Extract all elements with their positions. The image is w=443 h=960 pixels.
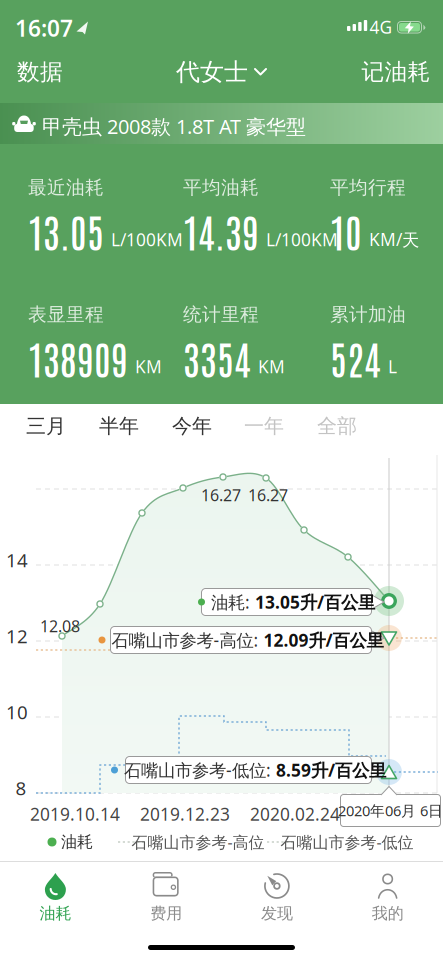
staticText: 半年 <box>99 414 139 438</box>
button[interactable]: 油耗 <box>0 863 110 937</box>
staticText: 油耗 <box>39 904 71 923</box>
staticText: KM <box>258 355 285 378</box>
button[interactable]: 全部 <box>307 408 367 444</box>
staticText: 发现 <box>261 904 293 923</box>
staticText: 记油耗 <box>361 58 430 86</box>
button[interactable]: 甲壳虫 2008款 1.8T AT 豪华型 <box>0 103 443 144</box>
staticText: 10 <box>330 206 362 256</box>
button[interactable]: 发现 <box>222 863 332 937</box>
staticText: 石嘴山市参考-低位 <box>280 831 413 853</box>
staticText: 平均油耗 <box>183 176 259 199</box>
staticText: 13.05升/百公里 <box>255 590 375 613</box>
staticText: 全部 <box>317 414 357 438</box>
staticText: 16.27 <box>201 484 241 506</box>
staticText: 12.08 <box>40 615 80 637</box>
staticText: KM <box>135 355 162 378</box>
staticText: 2019.12.23 <box>140 802 230 825</box>
staticText: 2019.10.14 <box>30 802 120 825</box>
staticText: 今年 <box>172 414 212 438</box>
staticText: 14 <box>6 548 28 572</box>
staticText: 16:07 <box>15 13 73 43</box>
staticText: 10 <box>6 700 28 724</box>
staticText: 累计加油 <box>330 303 406 326</box>
button[interactable]: 今年 <box>162 408 222 444</box>
button[interactable]: 数据 <box>10 50 70 94</box>
staticText: 甲壳虫 2008款 1.8T AT 豪华型 <box>42 113 306 140</box>
staticText: 费用 <box>150 904 182 923</box>
staticText: 2020年06月 6日 <box>338 801 443 820</box>
staticText: 4G <box>369 15 392 38</box>
staticText: KM/天 <box>369 228 419 251</box>
staticText: L <box>388 355 397 378</box>
staticText: 平均行程 <box>330 176 406 199</box>
button[interactable]: 记油耗 <box>358 50 434 94</box>
staticText: 8 <box>15 776 26 800</box>
staticText: 石嘴山市参考-高位 <box>131 831 264 853</box>
button[interactable]: 一年 <box>234 408 294 444</box>
staticText: 统计里程 <box>183 303 259 326</box>
staticText: 3354 <box>183 333 251 383</box>
staticText: 14.39 <box>183 206 259 256</box>
staticText: 代女士 <box>176 57 248 87</box>
staticText: 油耗 <box>61 832 93 852</box>
button[interactable]: 代女士 <box>176 50 266 94</box>
button[interactable]: 费用 <box>111 863 221 937</box>
button[interactable]: 我的 <box>333 863 443 937</box>
button[interactable]: 三月 <box>16 408 76 444</box>
staticText: 表显里程 <box>28 303 104 326</box>
staticText: 石嘴山市参考-高位: <box>111 628 263 651</box>
staticText: 我的 <box>372 904 404 923</box>
staticText: 油耗: <box>211 590 255 613</box>
staticText: 三月 <box>26 414 66 438</box>
staticText: 13.05 <box>28 206 104 256</box>
staticText: L/100KM <box>111 228 183 251</box>
staticText: L/100KM <box>266 228 338 251</box>
staticText: 12 <box>6 624 28 648</box>
staticText: 2020.02.24 <box>250 802 340 825</box>
button[interactable]: 半年 <box>89 408 149 444</box>
staticText: 最近油耗 <box>28 176 104 199</box>
staticText: 12.09升/百公里 <box>263 628 383 651</box>
staticText: 数据 <box>17 58 63 86</box>
staticText: 524 <box>330 333 381 383</box>
staticText: 石嘴山市参考-低位: <box>124 758 276 781</box>
staticText: 一年 <box>244 414 284 438</box>
staticText: 16.27 <box>248 484 288 506</box>
staticText: 138909 <box>28 333 128 383</box>
staticText: 8.59升/百公里 <box>276 758 386 781</box>
